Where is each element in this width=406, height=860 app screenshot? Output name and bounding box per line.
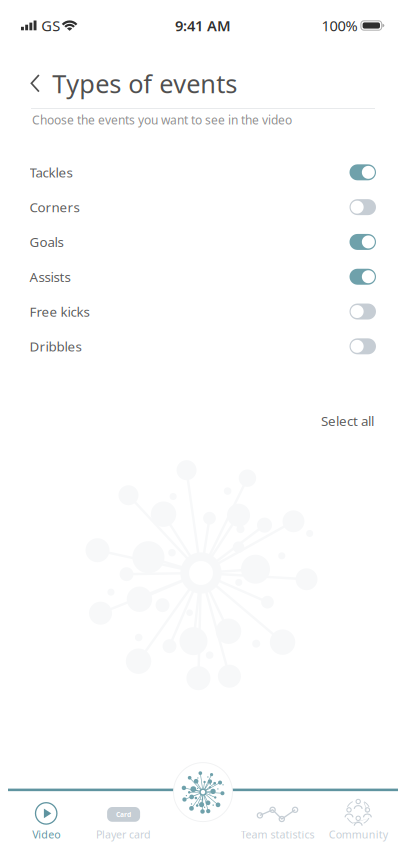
staticText: Dribbles [29, 337, 81, 355]
button[interactable]: Select all [0, 404, 406, 438]
staticText: Video [32, 827, 60, 842]
staticText: Free kicks [29, 303, 89, 320]
button[interactable]: Goals [0, 224, 406, 259]
staticText: Types of events [52, 67, 237, 100]
staticText: Corners [29, 198, 79, 216]
button[interactable]: Team statistics [236, 789, 319, 845]
staticText: GS [41, 16, 60, 35]
staticText: Assists [29, 268, 70, 286]
staticText: Tackles [29, 163, 72, 181]
button[interactable]: Video [0, 789, 92, 845]
button[interactable]: Assists [0, 259, 406, 294]
staticText: Select all [321, 412, 374, 430]
staticText: Player card [96, 827, 151, 842]
button[interactable]: Free kicks [0, 294, 406, 329]
button[interactable]: Tackles [0, 155, 406, 190]
button[interactable]: Dribbles [0, 329, 406, 364]
button[interactable]: Card [92, 789, 155, 845]
staticText: Goals [29, 233, 63, 251]
button[interactable]: Types of events [0, 51, 406, 104]
staticText: Community [329, 827, 388, 842]
button[interactable]: Community [319, 789, 397, 845]
staticText: 9:41 AM [175, 16, 231, 35]
staticText: Team statistics [240, 827, 314, 842]
button[interactable]: Corners [0, 190, 406, 224]
staticText: 100% [321, 16, 357, 35]
button[interactable]: Home [173, 762, 233, 822]
staticText: Card [116, 810, 131, 819]
staticText: Choose the events you want to see in the… [32, 112, 292, 128]
